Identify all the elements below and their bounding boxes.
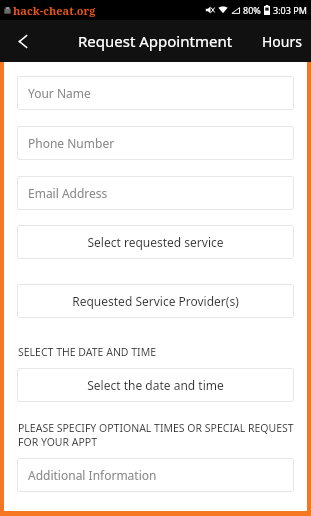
button[interactable]: Requested Service Provider(s) <box>17 284 294 318</box>
button[interactable]: Email Address <box>17 176 294 210</box>
staticText: Your Name <box>28 85 91 101</box>
button[interactable]: Additional Information <box>17 458 294 492</box>
staticText: Request Appointment <box>78 31 233 51</box>
button[interactable]: Phone Number <box>17 126 294 160</box>
button[interactable]: Your Name <box>17 76 294 110</box>
staticText: Additional Information <box>28 467 157 483</box>
button[interactable]: Select the date and time <box>17 368 294 402</box>
staticText: Requested Service Provider(s) <box>72 293 239 309</box>
staticText: Phone Number <box>28 135 115 151</box>
staticText: SELECT THE DATE AND TIME <box>18 345 294 359</box>
button[interactable]: Hours <box>253 20 311 62</box>
staticText: Select the date and time <box>87 377 224 393</box>
button[interactable]: Back <box>0 20 46 62</box>
staticText: 80% <box>243 4 261 16</box>
button[interactable]: Select requested service <box>17 225 294 259</box>
staticText: 3:03 PM <box>273 4 307 16</box>
staticText: Email Address <box>28 185 108 201</box>
staticText: Hours <box>262 32 302 51</box>
staticText: PLEASE SPECIFY OPTIONAL TIMES OR SPECIAL… <box>18 421 294 449</box>
staticText: Select requested service <box>87 234 224 250</box>
staticText: hack-cheat.org <box>13 3 96 18</box>
